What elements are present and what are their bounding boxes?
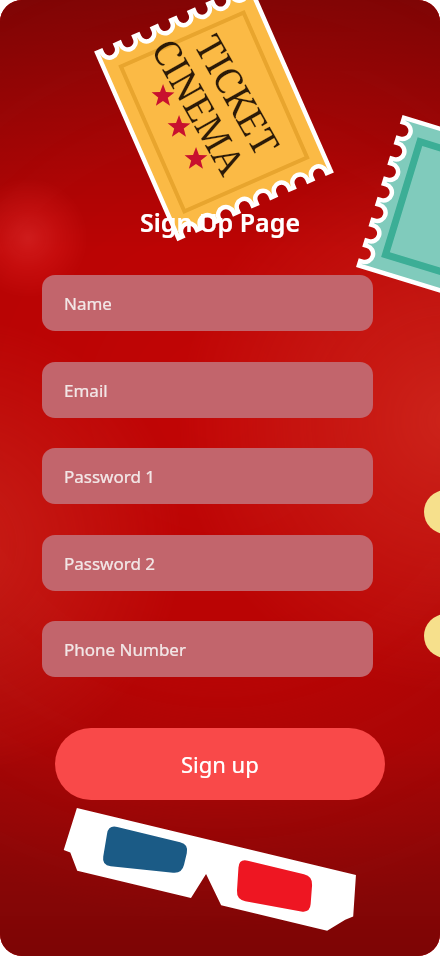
staticText: Password 2 bbox=[64, 552, 156, 575]
button[interactable]: Password 1 bbox=[42, 448, 373, 504]
staticText: Sign Up Page bbox=[0, 205, 440, 239]
staticText: Password 1 bbox=[64, 465, 156, 488]
button[interactable]: Password 2 bbox=[42, 535, 373, 591]
staticText: Name bbox=[64, 292, 112, 315]
staticText: Email bbox=[64, 379, 108, 402]
staticText: CINEMA bbox=[141, 29, 258, 183]
button[interactable]: Phone Number bbox=[42, 621, 373, 677]
staticText: TICKET bbox=[184, 25, 292, 164]
staticText: Phone Number bbox=[64, 638, 186, 661]
button[interactable]: Name bbox=[42, 275, 373, 331]
staticText: Sign up bbox=[181, 749, 259, 779]
button[interactable]: Email bbox=[42, 362, 373, 418]
button[interactable]: Sign up bbox=[55, 728, 385, 800]
